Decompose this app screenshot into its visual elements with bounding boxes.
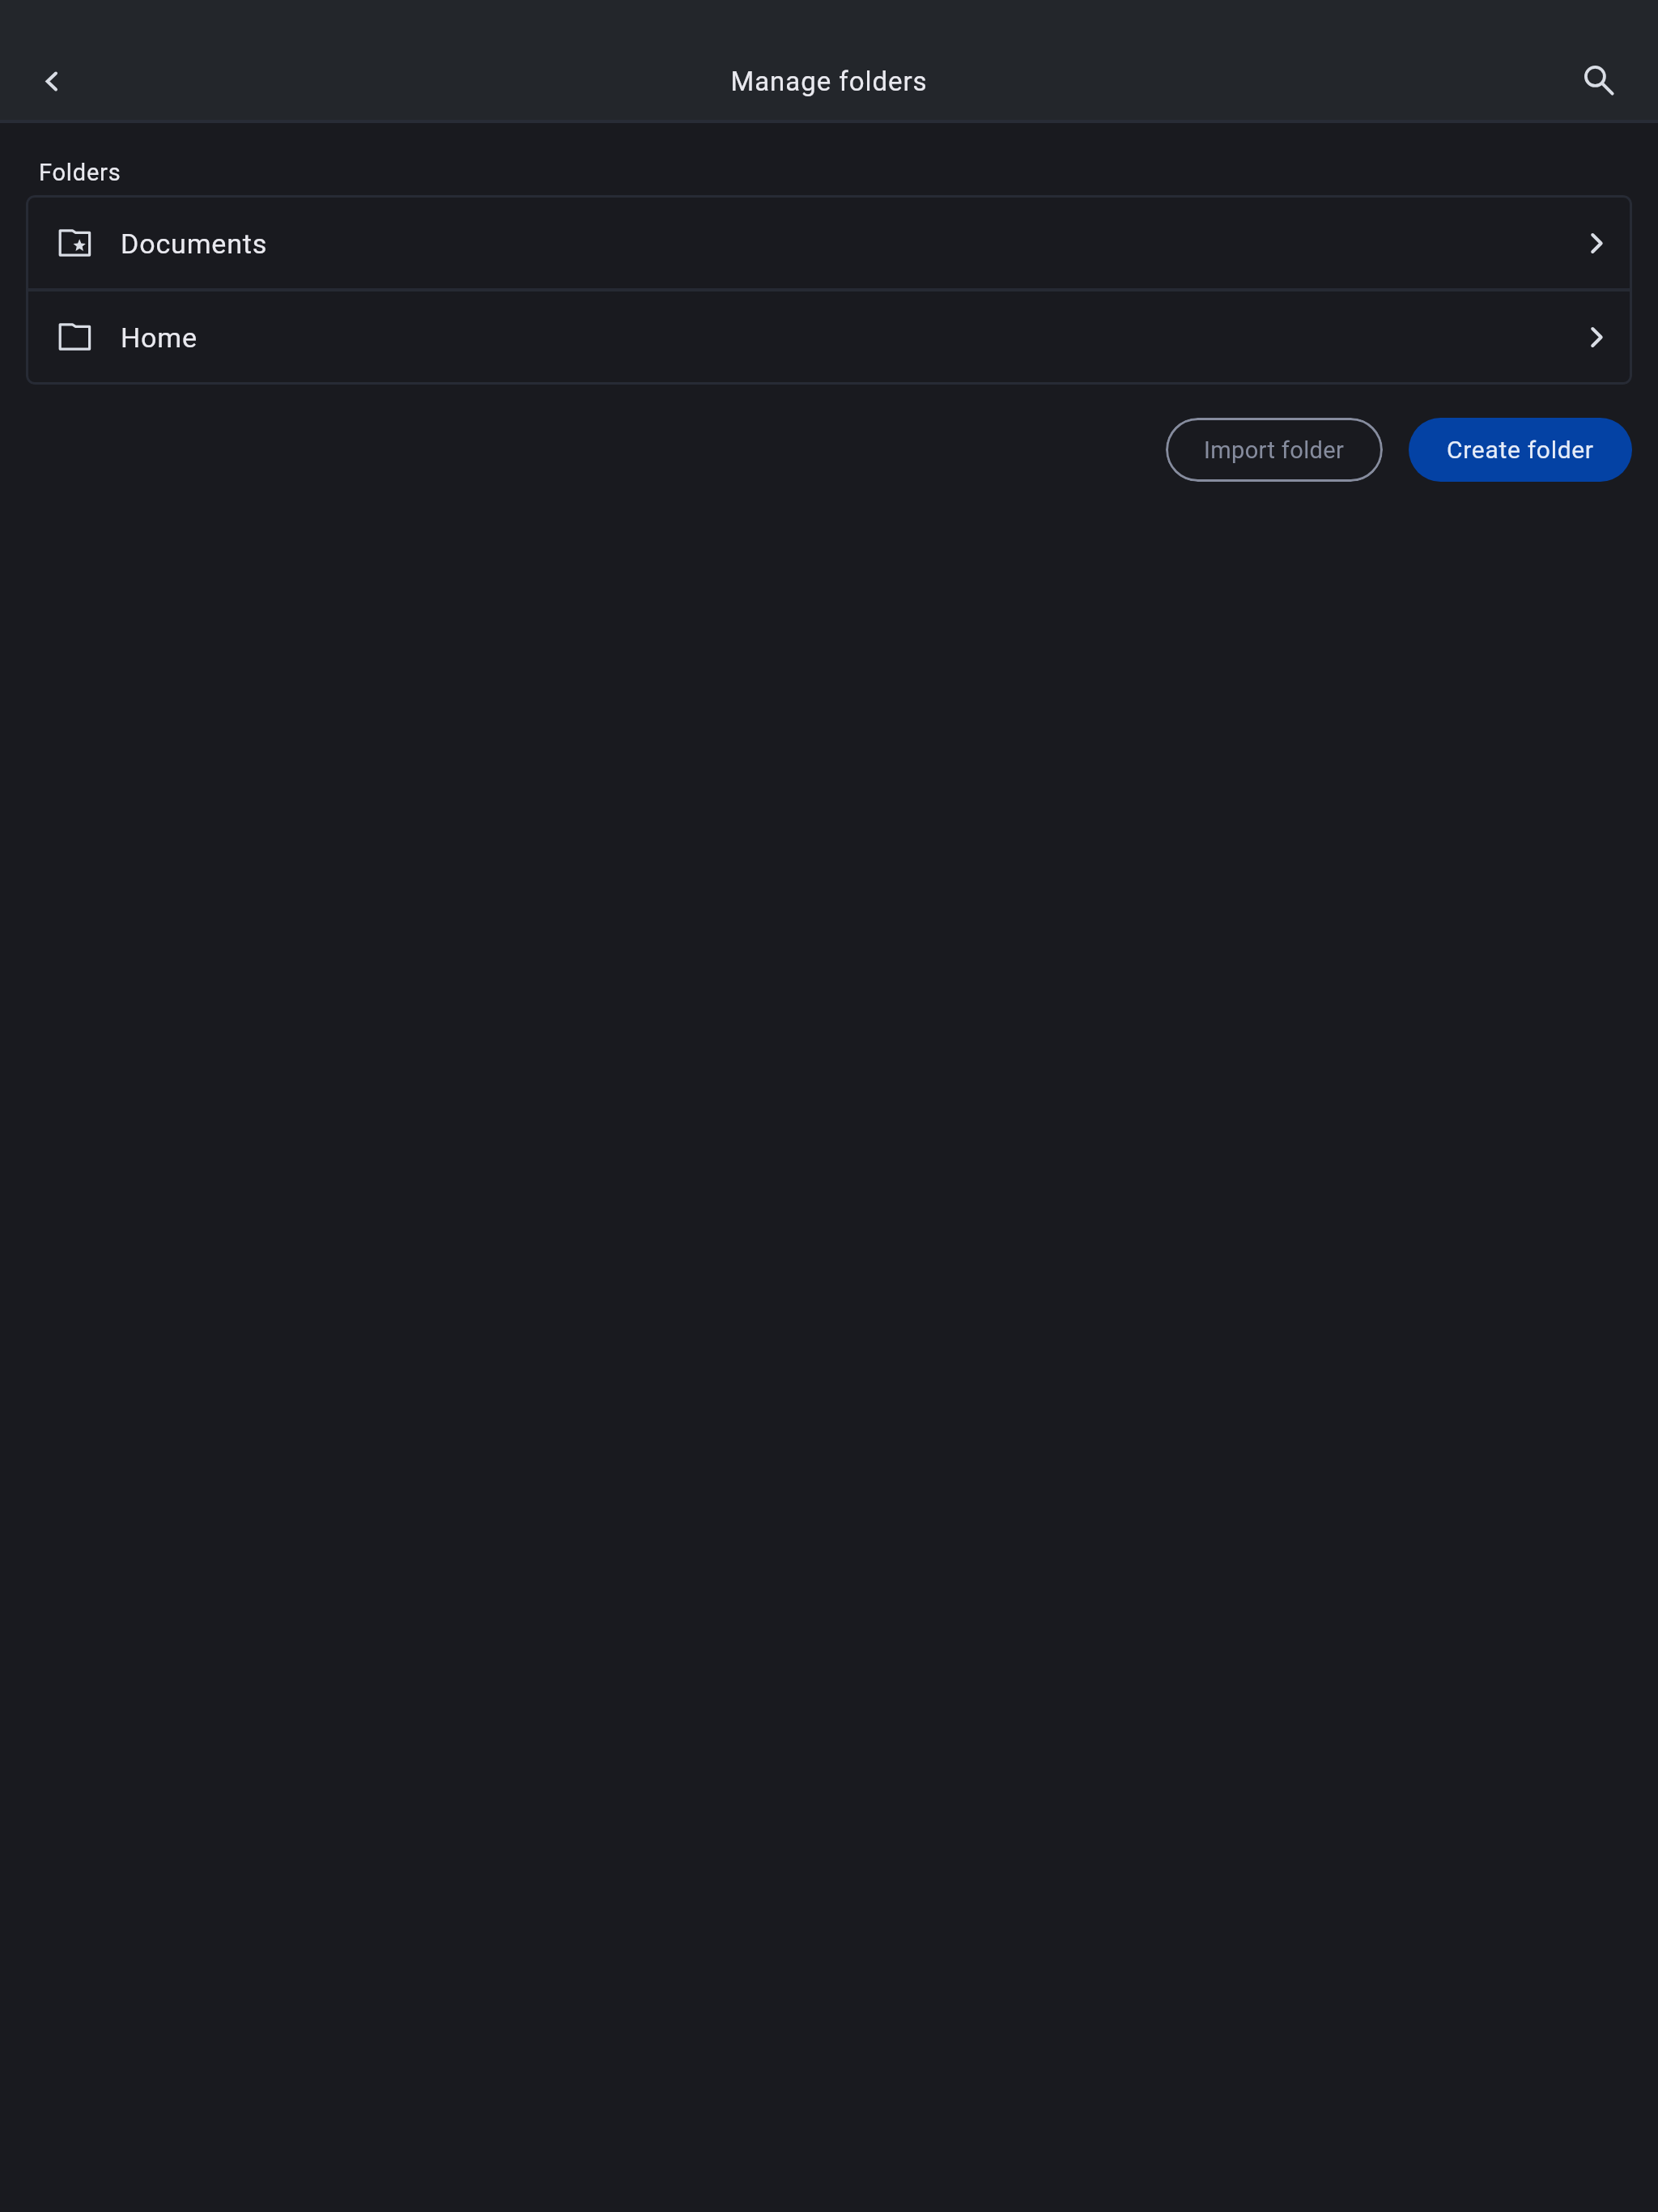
button[interactable]: Back [11, 40, 91, 121]
button[interactable]: Home [28, 291, 1630, 382]
staticText: Manage folders [0, 66, 1658, 97]
staticText: Documents [121, 228, 268, 260]
button[interactable]: Documents [28, 198, 1630, 288]
staticText: Import folder [1204, 436, 1345, 464]
button[interactable]: Search [1554, 36, 1635, 117]
staticText: Create folder [1447, 436, 1594, 464]
staticText: Folders [39, 159, 121, 186]
staticText: Home [121, 321, 198, 354]
button[interactable]: Import folder [1166, 418, 1383, 482]
button[interactable]: Create folder [1409, 418, 1632, 482]
